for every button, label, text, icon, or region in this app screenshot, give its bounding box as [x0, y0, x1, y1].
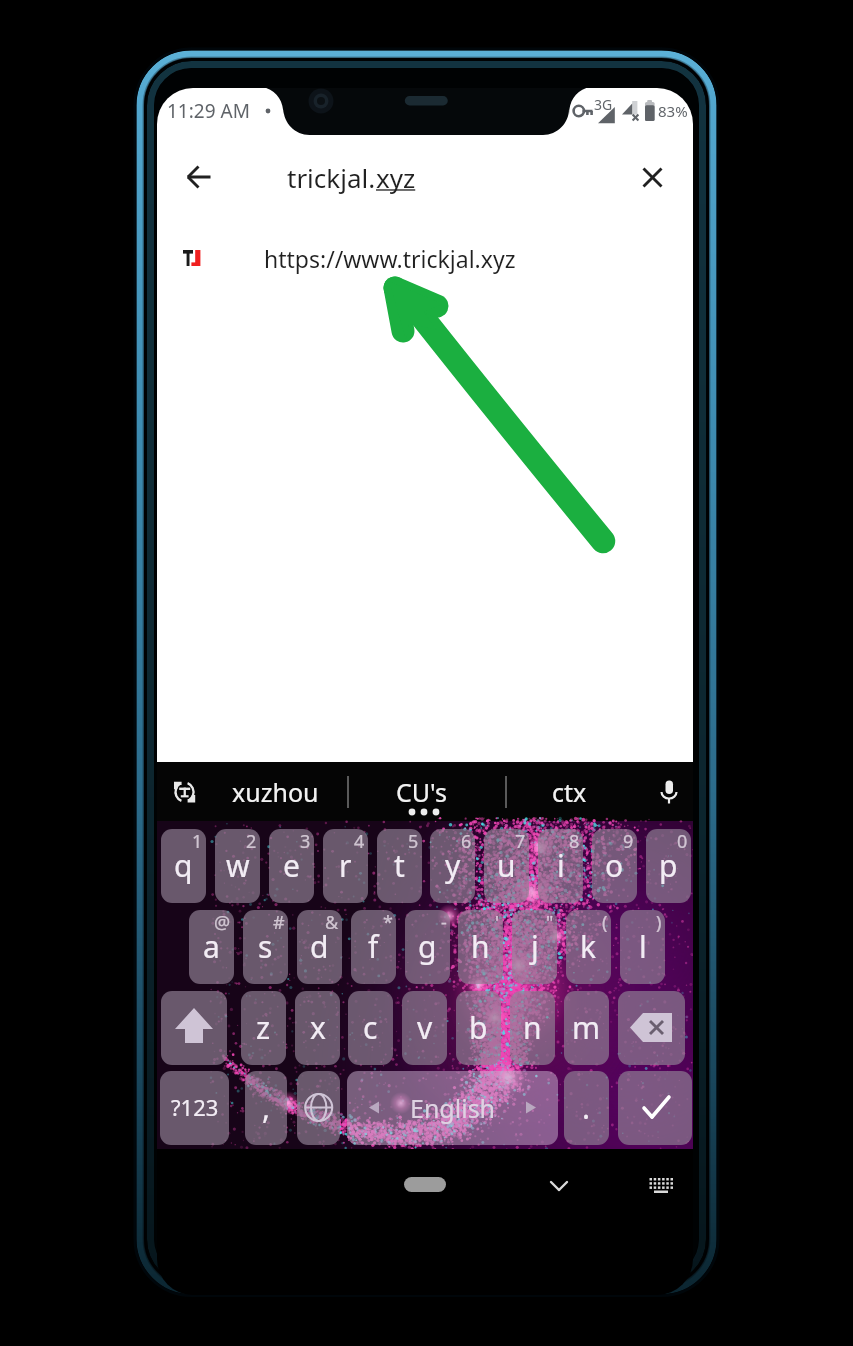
staticText: trickjal.	[287, 160, 376, 195]
staticText: f	[368, 926, 379, 967]
button[interactable]: )	[620, 910, 665, 984]
button[interactable]: (	[566, 910, 611, 984]
button[interactable]: '	[458, 910, 503, 984]
button[interactable]: Translate	[163, 771, 205, 813]
staticText: g	[418, 926, 437, 967]
staticText: d	[310, 926, 329, 967]
staticText: t	[394, 845, 405, 886]
staticText: m	[572, 1007, 601, 1048]
button[interactable]: xuzhou	[232, 775, 319, 809]
staticText: (	[602, 910, 608, 935]
button[interactable]: .	[564, 1071, 609, 1145]
button[interactable]: #	[243, 910, 288, 984]
staticText: "	[546, 910, 554, 935]
button[interactable]: Hide keyboard	[541, 1167, 577, 1203]
button[interactable]: Backspace	[618, 991, 685, 1065]
staticText: '	[495, 910, 500, 935]
staticText: 83%	[658, 101, 688, 121]
staticText: r	[339, 845, 352, 886]
button[interactable]: CU's	[396, 775, 447, 809]
button[interactable]: 3	[269, 829, 314, 903]
staticText: ,	[262, 1087, 271, 1128]
button[interactable]: ctx	[552, 775, 587, 809]
button[interactable]: n	[510, 991, 555, 1065]
button[interactable]: -	[405, 910, 450, 984]
button[interactable]: 2	[215, 829, 260, 903]
staticText: h	[471, 926, 490, 967]
staticText: )	[656, 910, 662, 935]
staticText: 7	[515, 829, 526, 854]
staticText: i	[557, 845, 565, 886]
button[interactable]: v	[402, 991, 447, 1065]
button[interactable]: b	[456, 991, 501, 1065]
button[interactable]: 8	[538, 829, 583, 903]
staticText: 11:29 AM	[167, 98, 250, 124]
staticText: -	[441, 910, 447, 935]
button[interactable]: x	[295, 991, 340, 1065]
staticText: English	[410, 1091, 496, 1125]
button[interactable]: *	[351, 910, 396, 984]
staticText: 5	[408, 829, 419, 854]
staticText: u	[497, 845, 516, 886]
staticText: l	[639, 926, 647, 967]
staticText: 1	[192, 829, 203, 854]
staticText: 3	[300, 829, 311, 854]
button[interactable]: ?123	[160, 1071, 229, 1145]
button[interactable]: @	[189, 910, 234, 984]
staticText: j	[531, 926, 539, 967]
button[interactable]: 5	[377, 829, 422, 903]
staticText: x	[310, 1007, 326, 1048]
staticText: 8	[569, 829, 580, 854]
button[interactable]: Enter	[618, 1071, 692, 1145]
staticText: &	[325, 910, 339, 935]
button[interactable]: Change language	[297, 1071, 340, 1145]
staticText: .	[582, 1087, 591, 1128]
staticText: c	[363, 1007, 378, 1048]
staticText: ?123	[171, 1092, 219, 1122]
staticText: b	[469, 1007, 488, 1048]
button[interactable]: 4	[323, 829, 368, 903]
staticText: a	[203, 926, 220, 967]
button[interactable]: Shift	[161, 991, 227, 1065]
staticText: z	[256, 1007, 271, 1048]
button[interactable]: m	[564, 991, 609, 1065]
staticText: w	[226, 845, 250, 886]
staticText: 4	[354, 829, 365, 854]
button[interactable]: 7	[484, 829, 529, 903]
staticText: v	[417, 1007, 433, 1048]
staticText: p	[659, 845, 678, 886]
staticText: https://www.trickjal.xyz	[264, 243, 516, 274]
staticText: 6	[461, 829, 472, 854]
button[interactable]: Switch keyboard	[643, 1167, 679, 1203]
button[interactable]: Voice input	[648, 771, 690, 813]
staticText: 0	[677, 829, 688, 854]
staticText: @	[214, 910, 231, 935]
button[interactable]: 9	[592, 829, 637, 903]
button[interactable]: 0	[646, 829, 691, 903]
staticText: k	[580, 926, 597, 967]
button[interactable]: Back	[174, 152, 224, 202]
staticText: o	[605, 845, 624, 886]
staticText: 3G	[594, 95, 613, 114]
button[interactable]: 1	[161, 829, 206, 903]
staticText: 2	[246, 829, 257, 854]
staticText: s	[258, 926, 273, 967]
button[interactable]: Close	[627, 152, 677, 202]
staticText: n	[523, 1007, 542, 1048]
staticText: y	[445, 845, 461, 886]
button[interactable]: z	[241, 991, 286, 1065]
button[interactable]: https://www.trickjal.xyz	[157, 223, 693, 293]
staticText: xyz	[376, 160, 416, 195]
staticText: e	[283, 845, 300, 886]
button[interactable]: "	[512, 910, 557, 984]
button[interactable]: Home	[404, 1177, 446, 1192]
staticText: q	[174, 845, 193, 886]
staticText: 9	[623, 829, 634, 854]
button[interactable]: c	[348, 991, 393, 1065]
button[interactable]: English	[347, 1071, 558, 1145]
button[interactable]: &	[297, 910, 342, 984]
button[interactable]: 6	[430, 829, 475, 903]
staticText: *	[383, 910, 393, 935]
staticText: #	[273, 910, 285, 935]
button[interactable]: ,	[245, 1071, 287, 1145]
